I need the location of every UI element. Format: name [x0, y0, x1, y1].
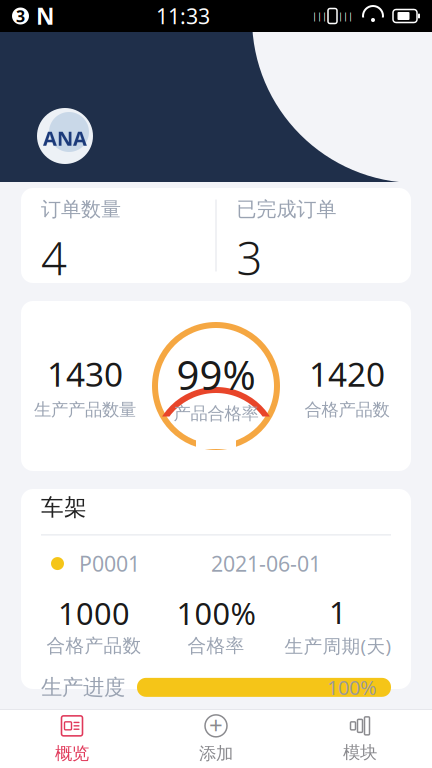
staticText: 1420 — [309, 352, 385, 396]
staticText: 4 — [41, 228, 67, 288]
staticText: ||| — [338, 10, 353, 22]
staticText: 生产进度 — [41, 674, 125, 700]
staticText: 1 — [329, 592, 347, 632]
staticText: 生产周期(天) — [284, 633, 391, 658]
staticText: 订单数量 — [41, 197, 121, 222]
button[interactable]: 概览 — [0, 706, 144, 768]
staticText: P0001 — [79, 549, 140, 578]
staticText: 合格产品数 — [46, 634, 141, 657]
staticText: ANA — [43, 125, 87, 151]
staticText: 概览 — [55, 743, 89, 764]
staticText: N — [36, 1, 54, 31]
staticText: 1000 — [58, 593, 130, 633]
staticText: 产品合格率 — [173, 403, 258, 424]
staticText: 添加 — [199, 743, 233, 764]
staticText: 合格率 — [187, 634, 244, 657]
button[interactable]: 车架 — [0, 489, 432, 689]
staticText: 已完成订单 — [236, 197, 336, 222]
staticText: + — [209, 709, 223, 741]
staticText: 99% — [176, 348, 255, 401]
button[interactable]: + — [144, 706, 288, 768]
staticText: ||| — [312, 10, 327, 22]
staticText: 1430 — [47, 352, 123, 396]
staticText: 3 — [16, 5, 25, 27]
staticText: 生产产品数量 — [34, 399, 136, 420]
staticText: 100% — [327, 674, 377, 701]
staticText: 100% — [176, 593, 255, 633]
staticText: 模块 — [343, 742, 377, 763]
staticText: 合格产品数 — [304, 399, 389, 420]
staticText: 3 — [236, 228, 262, 288]
staticText: 2021-06-01 — [211, 549, 321, 578]
staticText: 车架 — [41, 494, 87, 521]
staticText: 11:33 — [156, 2, 210, 30]
button[interactable]: 模块 — [288, 707, 432, 768]
